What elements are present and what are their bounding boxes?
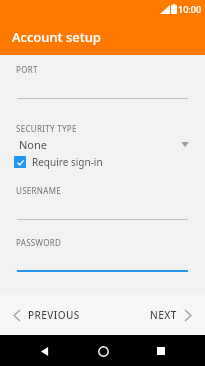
staticText: 10:00 (178, 3, 202, 15)
staticText: PREVIOUS (28, 308, 80, 322)
staticText: USERNAME (16, 185, 61, 196)
staticText: PORT (16, 64, 38, 75)
staticText: NEXT (150, 308, 177, 322)
staticText: Account setup (12, 28, 101, 46)
button[interactable]: Recent apps (147, 337, 175, 365)
staticText: None (19, 137, 48, 152)
button[interactable]: None (0, 137, 205, 152)
staticText: PASSWORD (16, 237, 62, 248)
staticText: Require sign-in (32, 155, 103, 169)
button[interactable]: Require sign-in (0, 155, 205, 169)
button[interactable]: NEXT (144, 300, 197, 330)
staticText: SECURITY TYPE (16, 123, 77, 134)
button[interactable]: Home (89, 337, 117, 365)
button[interactable]: Back (30, 337, 58, 365)
button[interactable]: PREVIOUS (8, 300, 86, 330)
